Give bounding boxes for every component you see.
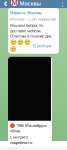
staticText: Решаем вопрос по доставке мебели. Ответи…: [10, 23, 52, 38]
staticText: Москва • 1 241 подписчик: [10, 16, 56, 22]
staticText: ⋮: [57, 0, 66, 8]
button[interactable]: M: [11, 0, 47, 12]
button[interactable]: More: [59, 0, 65, 7]
staticText: Новости Москвы: [19, 0, 41, 7]
staticText: 12 реакций: [32, 43, 51, 48]
staticText: ‹: [3, 0, 7, 10]
button[interactable]: Back: [2, 0, 9, 7]
staticText: 🙂🙂🙂🙂: [10, 40, 31, 52]
staticText: Новости Москвы: [10, 10, 42, 15]
staticText: M: [11, 0, 17, 7]
staticText: 🔴 1986 Масайбрусь обзор: [10, 123, 47, 133]
staticText: Смотрите подробности: [10, 134, 32, 145]
staticText: 1 241 подписчик: [19, 7, 47, 12]
